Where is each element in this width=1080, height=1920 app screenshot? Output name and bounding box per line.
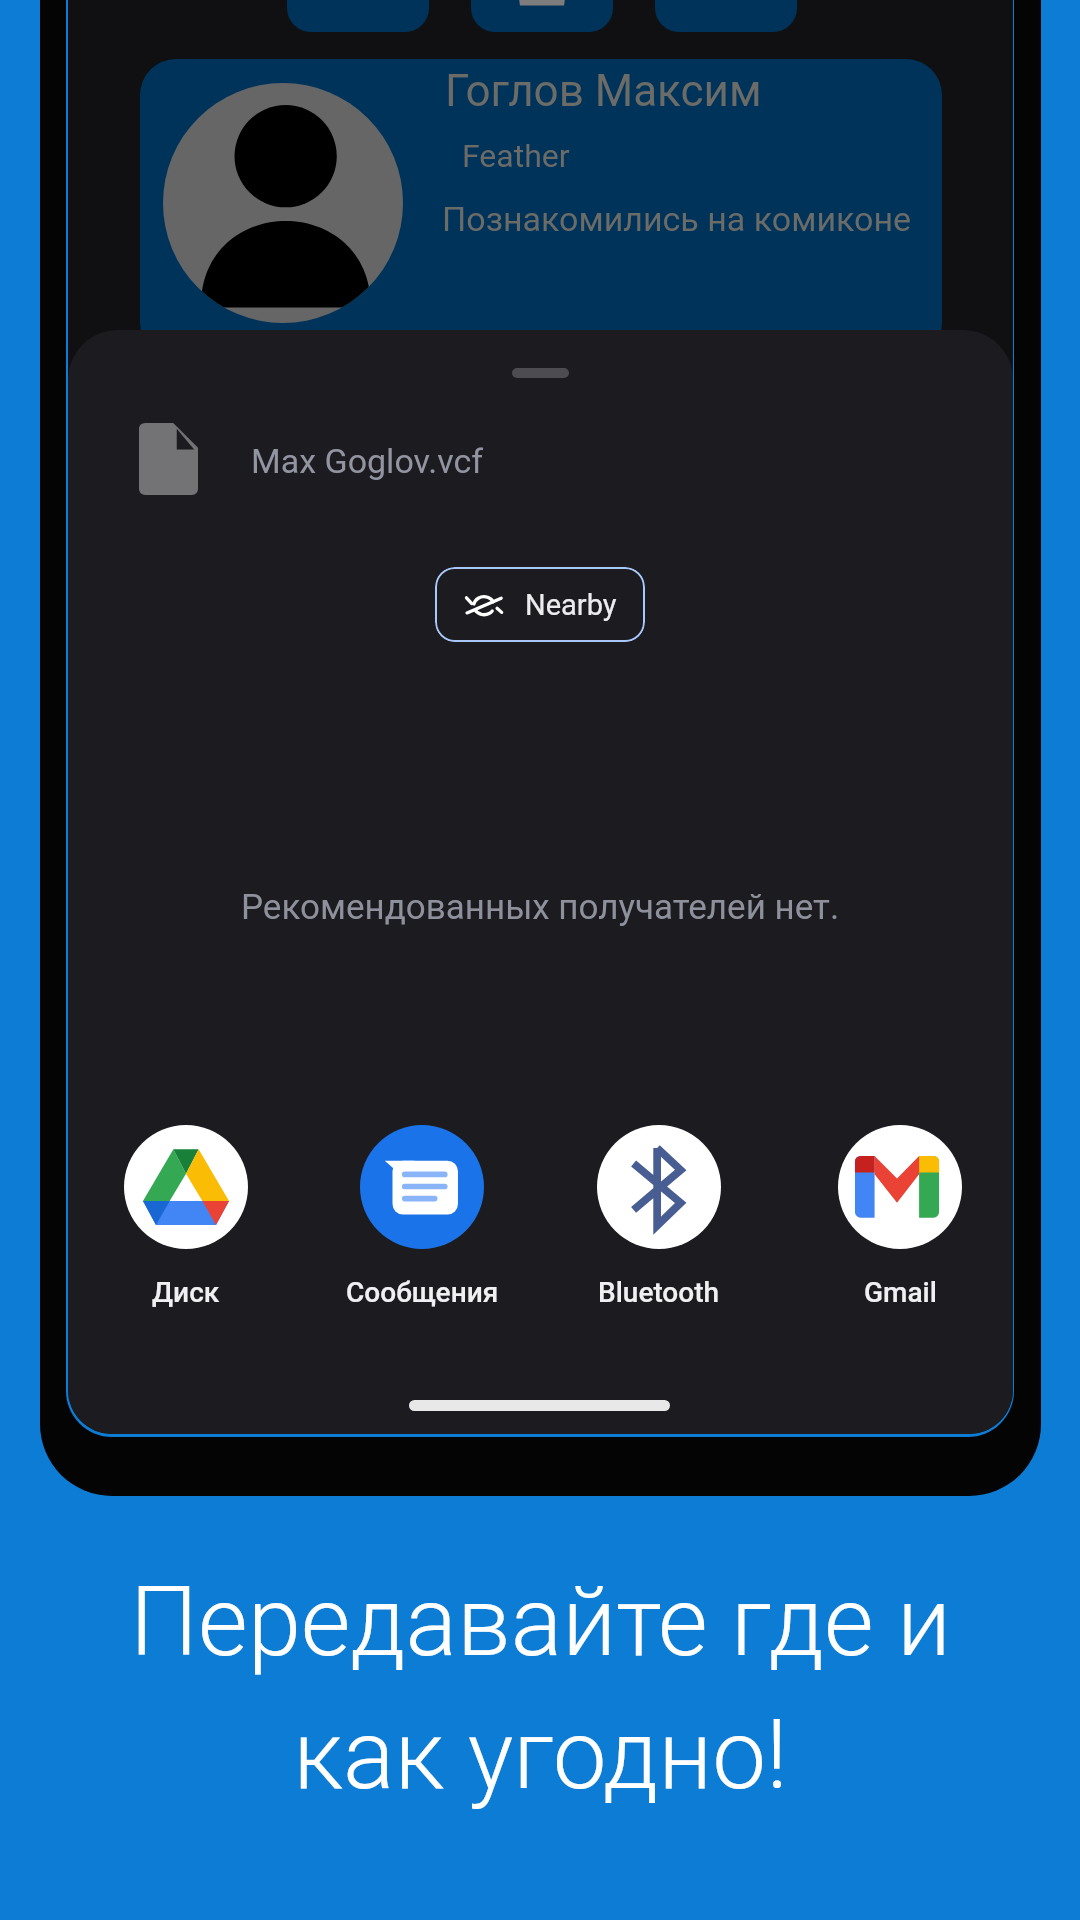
button[interactable]: Bluetooth xyxy=(542,1125,776,1309)
button[interactable]: Messages xyxy=(305,1125,539,1309)
other: File xyxy=(139,423,198,495)
button[interactable]: Google Drive xyxy=(69,1125,303,1309)
button[interactable]: Contact action xyxy=(287,0,429,32)
staticText: Познакомились на комиконе xyxy=(442,199,912,239)
staticText: Nearby xyxy=(525,588,617,622)
staticText: Feather xyxy=(462,137,570,175)
staticText: Передавайте где и как угодно! xyxy=(130,1566,951,1812)
button[interactable]: Contact action xyxy=(471,0,613,32)
button[interactable]: Гоглов Максим xyxy=(140,59,942,359)
other: Google Drive xyxy=(124,1125,248,1249)
staticText: Диск xyxy=(152,1276,220,1309)
staticText: Gmail xyxy=(864,1276,937,1309)
other: Bluetooth xyxy=(597,1125,721,1249)
other: Gmail xyxy=(838,1125,962,1249)
button[interactable]: Contact action xyxy=(655,0,797,32)
button[interactable]: Gmail xyxy=(783,1125,1013,1309)
staticText: Сообщения xyxy=(346,1276,499,1309)
other: Messages xyxy=(360,1125,484,1249)
staticText: Рекомендованных получателей нет. xyxy=(241,887,840,928)
staticText: Max Goglov.vcf xyxy=(251,441,484,481)
staticText: Bluetooth xyxy=(598,1276,720,1309)
staticText: Гоглов Максим xyxy=(445,65,762,117)
button[interactable]: Nearby xyxy=(435,567,645,642)
